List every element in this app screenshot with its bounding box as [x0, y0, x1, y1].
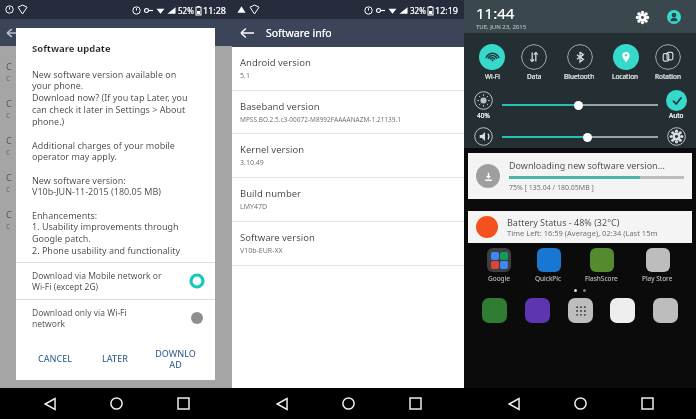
- staticText: Software version: [240, 231, 315, 244]
- button[interactable]: Home: [563, 388, 597, 419]
- button[interactable]: Software version: [232, 222, 464, 266]
- staticText: c: [6, 146, 10, 157]
- button[interactable]: LATER: [85, 336, 145, 380]
- button[interactable]: Back: [265, 388, 299, 419]
- button[interactable]: Android version: [232, 47, 464, 91]
- button[interactable]: Recents: [166, 388, 200, 419]
- staticText: FlashScore: [585, 274, 618, 283]
- button[interactable]: Recents: [398, 388, 432, 419]
- staticText: Location: [612, 72, 639, 81]
- staticText: Rotation: [655, 72, 681, 81]
- button[interactable]: Downloading new software version...: [468, 153, 692, 199]
- staticText: Android version: [240, 56, 311, 69]
- button[interactable]: Home: [99, 388, 133, 419]
- button[interactable]: Volume: [473, 126, 494, 147]
- staticText: Bluetooth: [564, 72, 595, 81]
- button[interactable]: QuickPic: [535, 248, 562, 283]
- button[interactable]: Download via Mobile network or Wi-Fi (ex…: [16, 263, 215, 299]
- staticText: C: [6, 97, 12, 109]
- staticText: MPSS.BO.2.5.c3-00072-M8992FAAAANAZM-1.21…: [240, 115, 401, 124]
- button[interactable]: Data: [519, 42, 549, 83]
- staticText: Kernel version: [240, 143, 305, 156]
- button[interactable]: CANCEL: [26, 336, 85, 380]
- staticText: Software info: [266, 26, 332, 40]
- button[interactable]: Phone: [482, 298, 507, 323]
- staticText: Wi-Fi: [485, 72, 500, 81]
- button[interactable]: Back: [497, 388, 531, 419]
- button[interactable]: Google: [487, 248, 511, 283]
- button[interactable]: Build number: [232, 178, 464, 222]
- button[interactable]: Camera: [653, 298, 678, 323]
- staticText: 3.10.49: [240, 158, 264, 168]
- staticText: Additional charges of your mobile operat…: [32, 139, 175, 163]
- staticText: 5.1: [240, 71, 250, 81]
- button[interactable]: Location: [610, 42, 641, 83]
- staticText: Build number: [240, 187, 302, 200]
- button[interactable]: Baseband version: [232, 91, 464, 134]
- staticText: Play Store: [642, 274, 673, 283]
- button[interactable]: Brightness: [473, 90, 494, 111]
- staticText: 11:44: [476, 3, 515, 23]
- staticText: TUE, JUN 23, 2015: [476, 23, 527, 31]
- staticText: 12:19: [435, 4, 459, 16]
- staticText: c: [6, 220, 10, 231]
- button[interactable]: Sound settings: [666, 126, 687, 147]
- button[interactable]: Download only via Wi-Fi network: [16, 300, 215, 336]
- button[interactable]: Kernel version: [232, 134, 464, 178]
- button[interactable]: Wi-Fi: [477, 42, 507, 83]
- staticText: 32%: [410, 5, 426, 16]
- staticText: c: [6, 72, 10, 83]
- button[interactable]: Home: [331, 388, 365, 419]
- staticText: Download only via Wi-Fi network: [32, 307, 191, 329]
- button[interactable]: Auto brightness: [666, 90, 687, 111]
- staticText: New software version available on your p…: [32, 68, 188, 128]
- staticText: Download via Mobile network or Wi-Fi (ex…: [32, 270, 191, 292]
- staticText: 52%: [178, 5, 194, 16]
- staticText: C: [6, 60, 12, 72]
- staticText: c: [6, 109, 10, 120]
- button[interactable]: Bluetooth: [562, 42, 597, 83]
- staticText: C: [6, 208, 12, 220]
- staticText: Auto: [669, 111, 684, 120]
- staticText: c: [6, 183, 10, 194]
- staticText: New software version: V10b-JUN-11-2015 (…: [32, 174, 161, 198]
- staticText: 40%: [477, 111, 490, 120]
- button[interactable]: Rotation: [653, 42, 683, 83]
- staticText: Baseband version: [240, 100, 320, 113]
- staticText: Downloading new software version...: [509, 159, 665, 171]
- staticText: Enhancements: 1. Usability improvements …: [32, 209, 181, 257]
- other: Back: [240, 26, 254, 40]
- button[interactable]: Settings: [632, 7, 652, 27]
- staticText: Battery Status - 48% (32°C): [507, 216, 620, 228]
- button[interactable]: Messages: [525, 298, 550, 323]
- staticText: 11:28: [203, 4, 227, 16]
- staticText: Time Left: 16:59 (Average), 02:34 (Last …: [507, 228, 658, 238]
- button[interactable]: Slider: [574, 101, 583, 110]
- button[interactable]: Back: [33, 388, 67, 419]
- staticText: QuickPic: [535, 274, 562, 283]
- button[interactable]: Play Store: [642, 248, 673, 283]
- button[interactable]: Recents: [630, 388, 664, 419]
- button[interactable]: Back: [232, 19, 464, 47]
- button[interactable]: DOWNLO AD: [145, 336, 205, 380]
- button[interactable]: Slider: [583, 133, 592, 142]
- button[interactable]: All apps: [568, 298, 593, 323]
- staticText: Data: [527, 72, 542, 81]
- button[interactable]: User profile: [664, 7, 684, 27]
- button[interactable]: Battery Status - 48% (32°C): [468, 211, 692, 243]
- staticText: LMY47D: [240, 202, 268, 212]
- button[interactable]: FlashScore: [585, 248, 618, 283]
- staticText: LATER: [102, 352, 128, 364]
- button[interactable]: Chrome: [610, 298, 635, 323]
- staticText: 75% [ 135.04 / 180.05MB ]: [509, 183, 594, 193]
- staticText: Software update: [32, 42, 111, 55]
- staticText: DOWNLO AD: [155, 347, 196, 370]
- staticText: Google: [488, 274, 510, 283]
- staticText: C: [6, 134, 12, 146]
- staticText: V10b-EUR-XX: [240, 246, 283, 256]
- staticText: C: [6, 171, 12, 183]
- staticText: CANCEL: [38, 352, 73, 364]
